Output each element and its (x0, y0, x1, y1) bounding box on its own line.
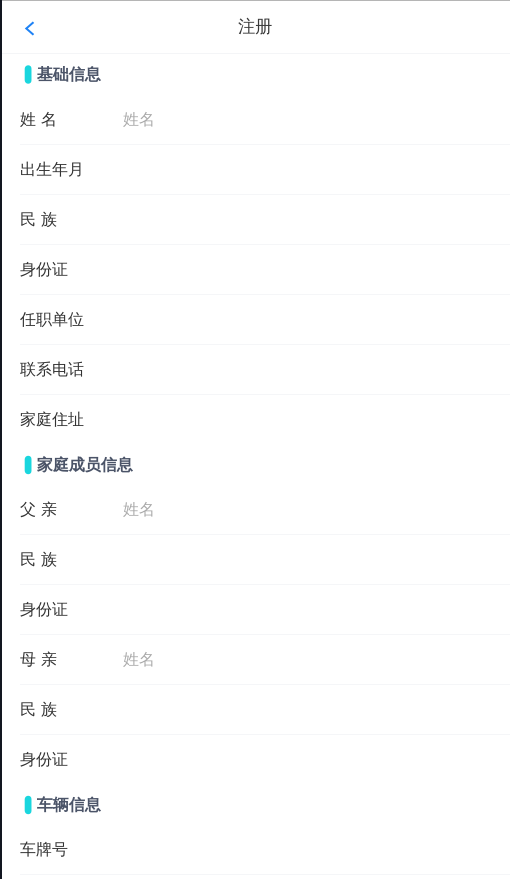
staticText: 基础信息 (37, 65, 101, 84)
staticText: 任职单位 (20, 310, 84, 329)
staticText: 姓名 (123, 500, 155, 519)
staticText: 家庭成员信息 (37, 455, 133, 475)
button[interactable]: 身份证 (0, 245, 510, 295)
button[interactable]: 联系电话 (0, 345, 510, 395)
button[interactable]: 民 族 (0, 685, 510, 735)
staticText: 姓名 (123, 110, 155, 129)
staticText: 身份证 (20, 260, 68, 279)
staticText: 家庭住址 (20, 410, 84, 429)
staticText: 父 亲 (20, 500, 57, 519)
button[interactable]: 民 族 (0, 195, 510, 245)
staticText: 身份证 (20, 600, 68, 619)
staticText: 姓 名 (20, 110, 57, 129)
staticText: 出生年月 (20, 160, 84, 179)
staticText: 车辆信息 (37, 795, 101, 815)
staticText: 车牌号 (20, 840, 68, 859)
staticText: 民 族 (20, 700, 57, 719)
staticText: 民 族 (20, 550, 57, 569)
staticText: 注册 (238, 16, 272, 37)
button[interactable]: 父 亲 (0, 485, 510, 535)
button[interactable]: 身份证 (0, 585, 510, 635)
button[interactable]: 姓 名 (0, 95, 510, 145)
button[interactable]: 任职单位 (0, 295, 510, 345)
button[interactable]: 民 族 (0, 535, 510, 585)
button[interactable]: Back (0, 0, 64, 53)
staticText: 身份证 (20, 750, 68, 769)
button[interactable]: 母 亲 (0, 635, 510, 685)
button[interactable]: 家庭住址 (0, 395, 510, 445)
button[interactable]: 出生年月 (0, 145, 510, 195)
staticText: 姓名 (123, 650, 155, 669)
staticText: 联系电话 (20, 360, 84, 379)
button[interactable]: 身份证 (0, 735, 510, 785)
button[interactable]: 车牌号 (0, 825, 510, 875)
staticText: 民 族 (20, 210, 57, 229)
staticText: 母 亲 (20, 650, 57, 669)
